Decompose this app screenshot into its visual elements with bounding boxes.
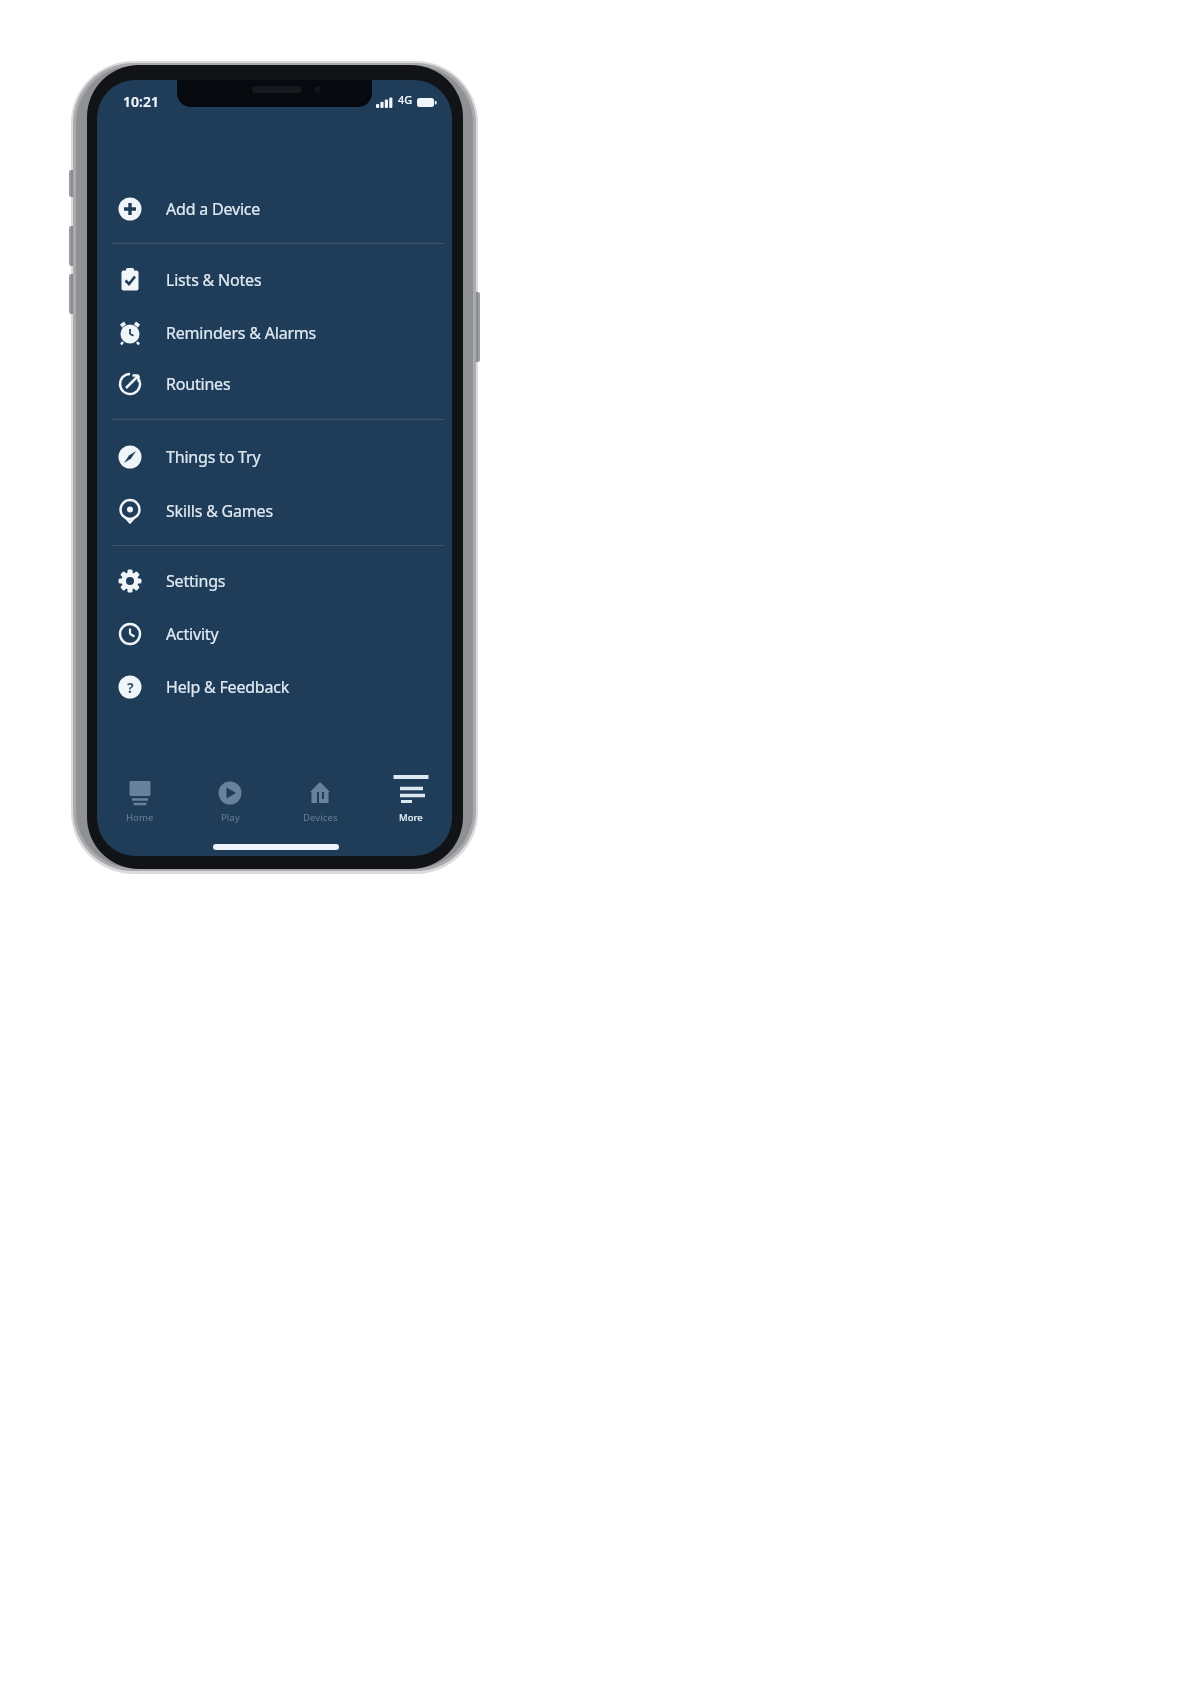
button[interactable]: Play (186, 768, 274, 828)
staticText: Activity (166, 623, 219, 645)
staticText: 10:21 (123, 92, 159, 111)
button[interactable]: Add a Device (97, 183, 452, 235)
button[interactable]: Home (97, 768, 184, 828)
button[interactable]: Devices (276, 768, 364, 828)
staticText: Help & Feedback (166, 676, 290, 698)
button[interactable]: More (367, 768, 452, 828)
staticText: More (399, 811, 423, 824)
button[interactable]: ? (97, 661, 452, 713)
staticText: Play (221, 811, 240, 824)
staticText: 4G (398, 92, 413, 107)
staticText: ? (127, 678, 134, 697)
button[interactable]: Settings (97, 555, 452, 607)
staticText: Skills & Games (166, 500, 273, 522)
staticText: Reminders & Alarms (166, 322, 317, 344)
button[interactable]: Things to Try (97, 431, 452, 483)
button[interactable]: Routines (97, 358, 452, 410)
staticText: Settings (166, 570, 226, 592)
button[interactable]: Activity (97, 608, 452, 660)
staticText: Things to Try (166, 446, 261, 468)
staticText: Add a Device (166, 198, 261, 220)
button[interactable]: Skills & Games (97, 485, 452, 537)
button[interactable]: Lists & Notes (97, 254, 452, 306)
button[interactable]: Reminders & Alarms (97, 307, 452, 359)
staticText: Lists & Notes (166, 269, 262, 291)
staticText: Devices (303, 811, 338, 824)
staticText: Home (126, 811, 154, 824)
staticText: Routines (166, 373, 231, 395)
